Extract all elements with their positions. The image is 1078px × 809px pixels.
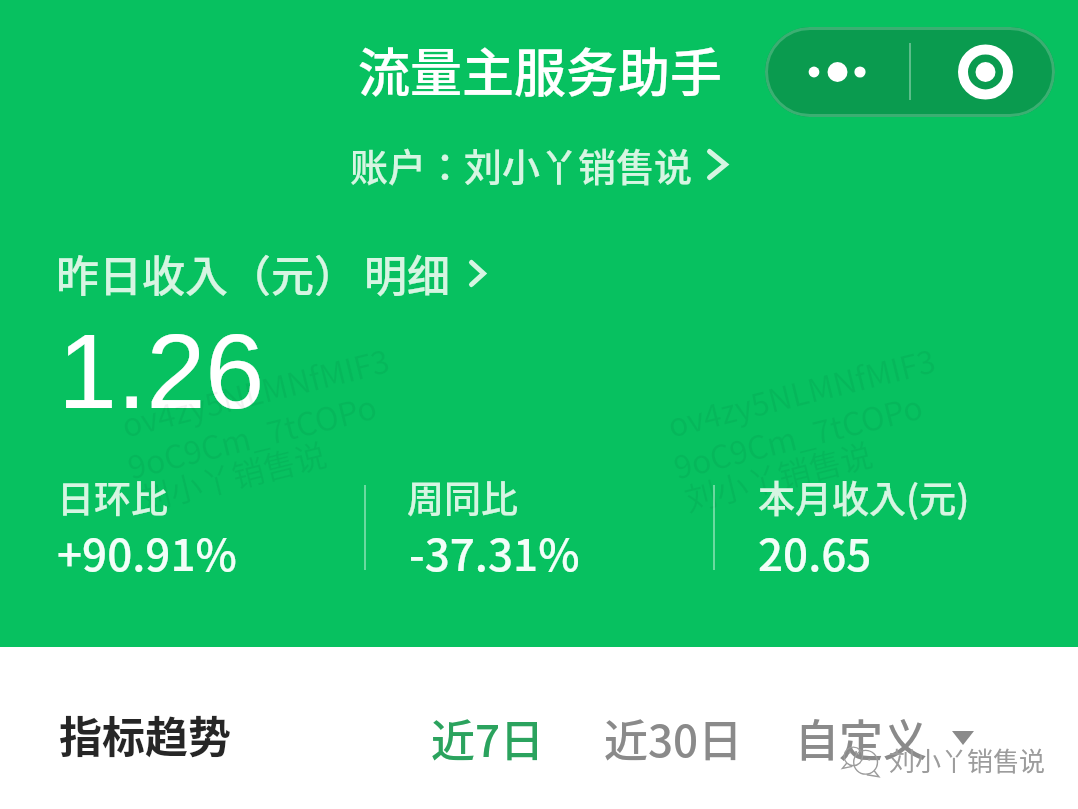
staticText: 日环比 [57,470,168,524]
staticText: 指标趋势 [59,703,231,765]
button[interactable]: More options [765,27,910,117]
staticText: 明细 [364,242,450,304]
button[interactable]: 近7日 [431,706,545,770]
staticText: +90.91% [57,520,237,584]
staticText: 周同比 [407,470,518,524]
staticText: 本月收入(元) [758,470,970,524]
button[interactable]: Close mini program [912,27,1055,117]
button[interactable]: 账户：刘小丫销售说 [350,137,728,192]
staticText: 昨日收入（元） [56,242,357,304]
button[interactable]: 近30日 [604,706,743,770]
staticText: 1.26 [58,312,265,430]
staticText: 20.65 [758,520,872,584]
staticText: 9oC9Cm_7tCOPo [668,382,928,488]
staticText: 流量主服务助手 [358,32,723,107]
staticText: 刘小丫销售说 [889,741,1046,779]
staticText: 9oC9Cm_7tCOPo [122,382,382,488]
staticText: 刘小丫销售说 [679,429,878,521]
button[interactable]: 自定义 [795,706,974,770]
button[interactable]: 明细 [364,242,486,304]
staticText: ov4zy5NLMNfMIF3 [116,335,394,447]
staticText: 自定义 [795,706,927,770]
staticText: 刘小丫销售说 [133,429,332,521]
staticText: 账户：刘小丫销售说 [350,137,693,192]
staticText: -37.31% [409,520,580,584]
